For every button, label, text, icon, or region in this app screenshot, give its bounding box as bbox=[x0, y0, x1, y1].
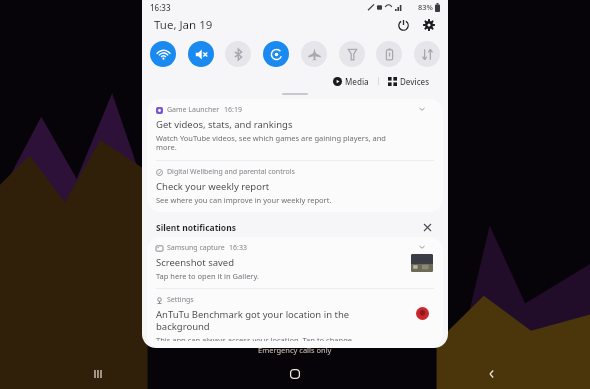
staticText: Digital Wellbeing and parental controls bbox=[167, 167, 295, 177]
button[interactable]: Devices bbox=[384, 74, 434, 89]
staticText: This app can always access your location… bbox=[156, 335, 355, 341]
button[interactable]: Settings bbox=[420, 16, 438, 34]
button[interactable]: Airplane mode bbox=[301, 41, 327, 67]
staticText: 83% bbox=[418, 2, 433, 12]
staticText: Check your weekly report bbox=[156, 180, 270, 193]
button[interactable]: Flashlight bbox=[339, 41, 365, 67]
button[interactable]: Settings bbox=[147, 289, 443, 348]
button[interactable]: Mobile data bbox=[414, 41, 440, 67]
staticText: 16:33 bbox=[150, 2, 171, 13]
button[interactable]: Digital Wellbeing and parental controls bbox=[147, 161, 443, 212]
staticText: Samsung capture bbox=[167, 243, 225, 253]
staticText: Devices bbox=[400, 76, 430, 87]
staticText: Tue, Jan 19 bbox=[154, 17, 213, 33]
button[interactable]: Power saving bbox=[376, 41, 402, 67]
button[interactable]: Dismiss silent notifications bbox=[421, 221, 434, 234]
staticText: 16:19 bbox=[224, 105, 242, 115]
button[interactable]: Recents bbox=[0, 359, 196, 389]
button[interactable]: Game Launcher bbox=[147, 99, 443, 160]
staticText: AnTuTu Benchmark got your location in th… bbox=[156, 308, 404, 333]
button[interactable]: Back bbox=[393, 359, 590, 389]
button[interactable]: Wi-Fi bbox=[150, 41, 176, 67]
staticText: Media bbox=[345, 76, 369, 87]
button[interactable]: Auto rotate bbox=[263, 41, 289, 67]
staticText: See where you can improve in your weekly… bbox=[156, 195, 332, 205]
staticText: Silent notifications bbox=[156, 222, 236, 234]
staticText: Watch YouTube videos, see which games ar… bbox=[156, 133, 404, 153]
button[interactable]: Bluetooth bbox=[225, 41, 251, 67]
button[interactable]: Media bbox=[329, 74, 373, 89]
button[interactable]: Home bbox=[196, 359, 393, 389]
staticText: Game Launcher bbox=[167, 105, 220, 115]
button[interactable]: Samsung capture bbox=[147, 237, 443, 288]
staticText: Settings bbox=[167, 295, 194, 305]
button[interactable]: Power bbox=[394, 16, 412, 34]
button[interactable]: Sound bbox=[188, 41, 214, 67]
staticText: Emergency calls only bbox=[258, 345, 332, 355]
staticText: Screenshot saved bbox=[156, 256, 235, 269]
staticText: 16:33 bbox=[229, 243, 247, 253]
staticText: Get videos, stats, and rankings bbox=[156, 118, 293, 131]
staticText: Tap here to open it in Gallery. bbox=[156, 271, 260, 281]
